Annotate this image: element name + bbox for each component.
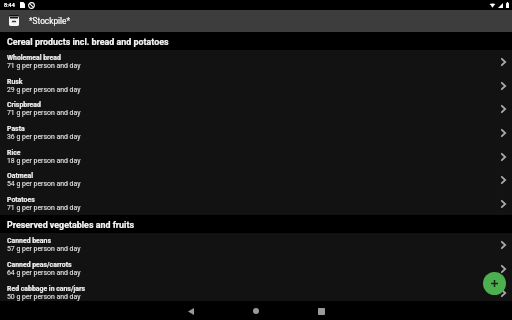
staticText: Oatmeal <box>7 172 33 180</box>
staticText: Rusk <box>7 78 23 86</box>
staticText: 8:44 <box>4 2 15 8</box>
button[interactable]: Home <box>248 303 264 319</box>
staticText: 64 g per person and day <box>7 269 81 277</box>
staticText: 36 g per person and day <box>7 133 81 141</box>
button[interactable]: Back <box>183 303 199 319</box>
button[interactable]: Rice <box>0 145 512 169</box>
button[interactable]: Canned beans <box>0 233 512 257</box>
staticText: 54 g per person and day <box>7 180 81 188</box>
staticText: Canned peas/carrots <box>7 261 72 269</box>
button[interactable]: Pasta <box>0 121 512 145</box>
staticText: Rice <box>7 149 21 157</box>
staticText: *Stockpile* <box>29 16 71 26</box>
staticText: Canned beans <box>7 237 51 245</box>
button[interactable]: Add item <box>483 272 506 295</box>
button[interactable]: Canned peas/carrots <box>0 257 512 281</box>
button[interactable]: Wholemeal bread <box>0 50 512 74</box>
staticText: 71 g per person and day <box>7 204 81 212</box>
button[interactable]: Recents <box>313 303 329 319</box>
button[interactable]: Potatoes <box>0 192 512 216</box>
button[interactable]: Rusk <box>0 74 512 98</box>
staticText: Crispbread <box>7 101 41 109</box>
staticText: 50 g per person and day <box>7 293 81 301</box>
staticText: Cereal products incl. bread and potatoes <box>7 37 169 47</box>
button[interactable]: Crispbread <box>0 97 512 121</box>
staticText: Preserved vegetables and fruits <box>7 220 134 230</box>
staticText: Wholemeal bread <box>7 54 61 62</box>
staticText: 71 g per person and day <box>7 62 81 70</box>
staticText: Red cabbage in cans/jars <box>7 285 85 293</box>
staticText: Potatoes <box>7 196 35 204</box>
staticText: 29 g per person and day <box>7 86 81 94</box>
staticText: 18 g per person and day <box>7 157 81 165</box>
button[interactable]: Oatmeal <box>0 168 512 192</box>
button[interactable]: Red cabbage in cans/jars <box>0 281 512 305</box>
staticText: 71 g per person and day <box>7 109 81 117</box>
button[interactable]: Stockpile <box>9 15 19 26</box>
staticText: Pasta <box>7 125 25 133</box>
staticText: 57 g per person and day <box>7 245 81 253</box>
